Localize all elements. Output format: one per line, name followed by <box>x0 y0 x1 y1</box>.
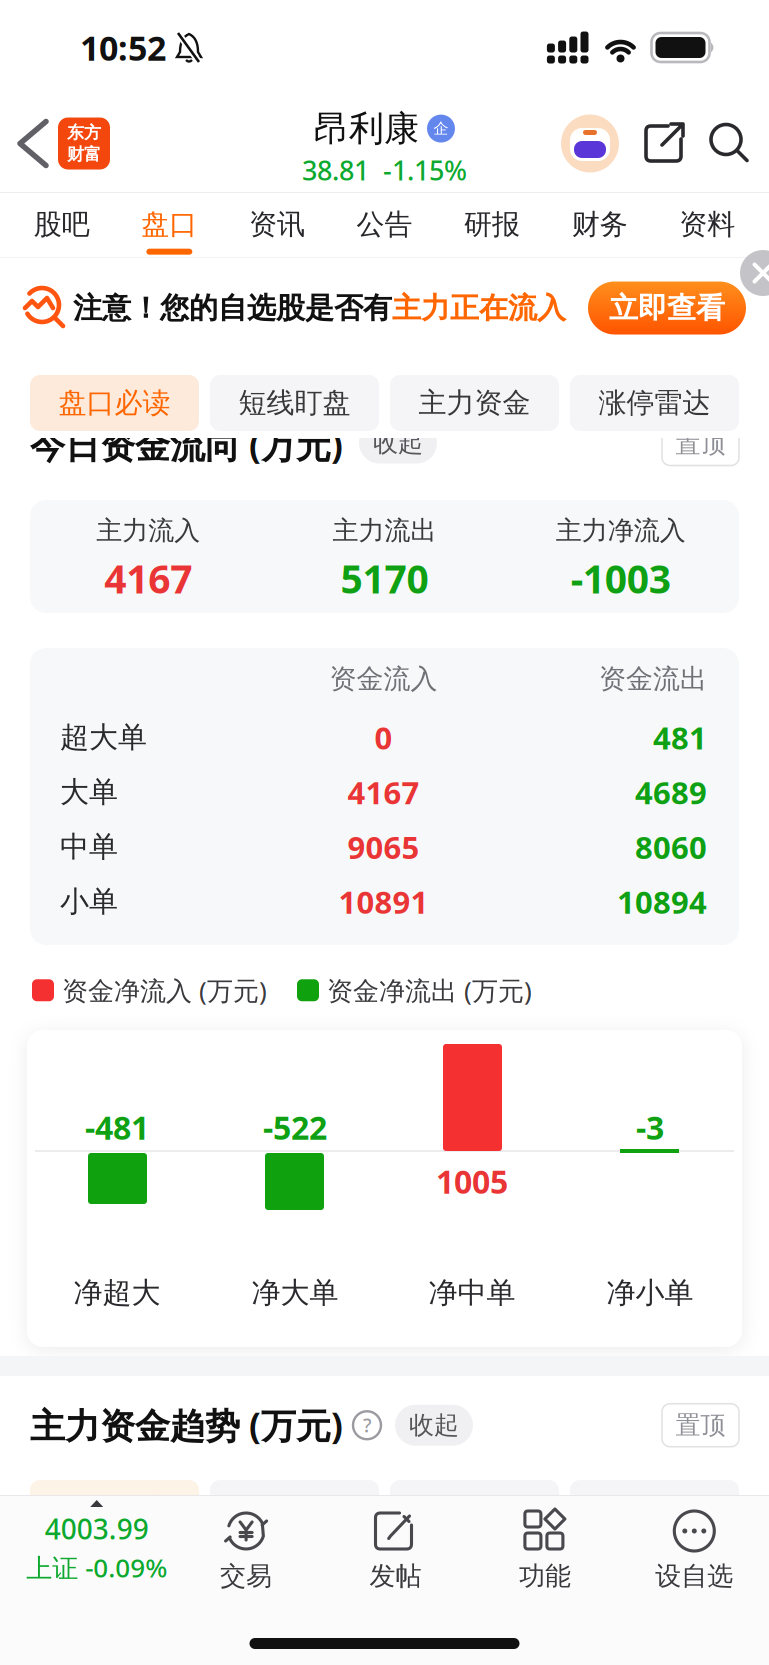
staticText: 净中单 <box>428 1275 515 1311</box>
button[interactable]: 主力资金 <box>390 375 559 431</box>
staticText: 财务 <box>572 207 628 242</box>
button[interactable]: 立即查看 <box>588 281 746 334</box>
staticText: -3 <box>636 1106 664 1148</box>
staticText: 主力流出 <box>332 515 436 546</box>
staticText: 4167 <box>104 553 192 604</box>
button[interactable]: Share <box>619 121 687 166</box>
button[interactable]: 涨停雷达 <box>570 375 739 431</box>
button[interactable]: 60日资金流入 <box>570 1480 739 1536</box>
staticText: 企 <box>433 119 448 138</box>
staticText: 涨停雷达 <box>598 386 710 420</box>
button[interactable]: 置顶 <box>662 1404 739 1447</box>
staticText: 9065 <box>347 826 419 867</box>
staticText: 今日资金流向 (万元) <box>30 422 343 468</box>
staticText: -1003 <box>571 553 671 604</box>
staticText: 10891 <box>338 881 428 922</box>
staticText: -522 <box>263 1106 327 1148</box>
staticText: 收起 <box>409 1410 459 1441</box>
staticText: 4689 <box>635 771 707 813</box>
staticText: 10:52 <box>80 25 166 70</box>
staticText: 4167 <box>347 771 419 813</box>
button[interactable]: 帮助 <box>343 1411 381 1439</box>
staticText: 盘口必读 <box>58 386 170 420</box>
staticText: 设自选 <box>655 1560 733 1592</box>
button[interactable]: 东方财富 <box>46 117 110 169</box>
staticText: 主力资金趋势 (万元) <box>30 1402 343 1448</box>
staticText: 大单 <box>60 774 118 810</box>
staticText: 10894 <box>617 881 707 922</box>
button[interactable]: 20日资金流入 <box>390 1480 559 1536</box>
staticText: 资讯 <box>249 207 305 242</box>
staticText: 60日资金流入 <box>574 1491 734 1525</box>
button[interactable]: 收起 <box>395 1405 473 1446</box>
staticText: 当日资金流入 <box>36 1492 192 1524</box>
staticText: 资金流出 <box>599 662 707 696</box>
button[interactable]: 发帖 <box>321 1509 470 1592</box>
staticText: 38.81 -1.15% <box>302 152 467 188</box>
staticText: 收起 <box>373 428 423 458</box>
button[interactable]: 资料 <box>679 207 735 255</box>
staticText: ? <box>363 1413 371 1438</box>
staticText: 主力流入 <box>96 515 200 546</box>
staticText: 481 <box>653 717 707 758</box>
button[interactable]: 收起 <box>359 422 437 463</box>
staticText: 交易 <box>220 1560 272 1592</box>
staticText: 公告 <box>356 207 412 242</box>
staticText: 净超大 <box>73 1275 160 1311</box>
staticText: 注意！您的自选股是否有 <box>73 290 392 326</box>
button[interactable]: 财务 <box>572 207 628 255</box>
staticText: 净小单 <box>606 1275 693 1311</box>
staticText: 5日资金流入 <box>222 1491 367 1525</box>
staticText: 置顶 <box>675 429 725 459</box>
staticText: 资金流入 <box>329 662 437 696</box>
button[interactable]: 功能 <box>470 1509 620 1592</box>
staticText: 财富 <box>67 144 101 165</box>
staticText: 研报 <box>464 207 520 242</box>
staticText: 1005 <box>436 1160 508 1202</box>
staticText: 4003.99 <box>45 1510 149 1547</box>
button[interactable]: 主力正在流入提示 <box>0 258 769 358</box>
staticText: 资料 <box>679 207 735 242</box>
staticText: 中单 <box>60 829 118 865</box>
button[interactable]: 交易 <box>171 1509 321 1592</box>
staticText: 置顶 <box>675 1410 725 1441</box>
staticText: 超大单 <box>60 720 147 755</box>
staticText: 资金净流入 (万元) <box>62 973 267 1007</box>
staticText: 东方 <box>67 122 101 143</box>
button[interactable]: 上证指数 <box>22 1500 171 1585</box>
staticText: 短线盯盘 <box>238 386 350 420</box>
button[interactable]: Search <box>687 122 751 164</box>
staticText: 主力资金 <box>418 386 530 420</box>
staticText: 5170 <box>340 553 428 604</box>
staticText: 主力正在流入 <box>392 290 566 326</box>
staticText: 净大单 <box>251 1275 338 1311</box>
button[interactable]: 盘口 <box>141 207 197 255</box>
button[interactable]: Back <box>0 121 46 165</box>
staticText: 资金净流出 (万元) <box>327 973 532 1007</box>
button[interactable]: 研报 <box>464 207 520 255</box>
button[interactable]: 当日资金流入 <box>30 1480 199 1536</box>
staticText: 股吧 <box>34 207 90 242</box>
staticText: 0 <box>374 717 392 758</box>
staticText: -481 <box>85 1106 149 1148</box>
staticText: 盘口 <box>141 207 197 242</box>
button[interactable]: 公告 <box>356 207 412 255</box>
button[interactable]: 智能助手 <box>561 114 619 172</box>
staticText: 发帖 <box>369 1560 421 1592</box>
button[interactable]: 股吧 <box>34 207 90 255</box>
button[interactable]: 5日资金流入 <box>210 1480 379 1536</box>
button[interactable]: 盘口必读 <box>30 375 199 431</box>
staticText: 8060 <box>635 826 707 867</box>
button[interactable]: 短线盯盘 <box>210 375 379 431</box>
button[interactable]: 资讯 <box>249 207 305 255</box>
staticText: 上证 -0.09% <box>26 1550 167 1585</box>
button[interactable]: 置顶 <box>662 422 739 465</box>
staticText: 20日资金流入 <box>394 1491 554 1525</box>
staticText: 昂利康 <box>314 107 419 150</box>
staticText: 主力净流入 <box>556 515 686 546</box>
staticText: 立即查看 <box>609 290 725 326</box>
staticText: 小单 <box>60 884 118 919</box>
staticText: 功能 <box>519 1560 571 1592</box>
button[interactable]: 设自选 <box>620 1509 769 1592</box>
